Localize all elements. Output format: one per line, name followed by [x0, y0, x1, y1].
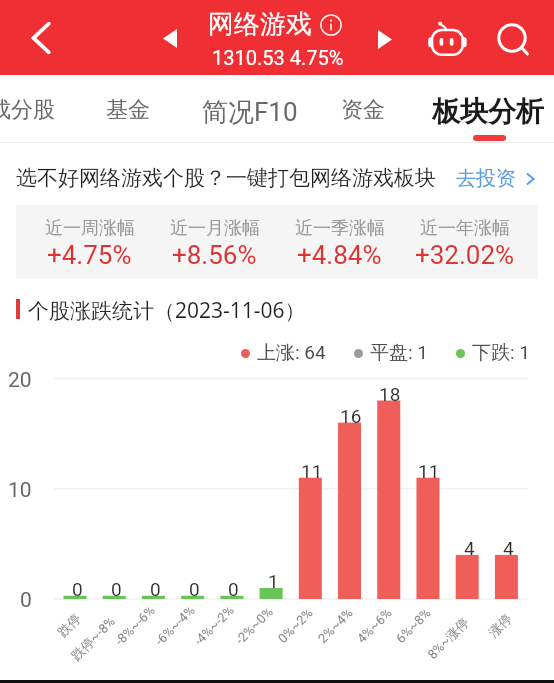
staticText: 下跌: 1 — [472, 341, 530, 365]
staticText: 平盘: 1 — [370, 341, 428, 365]
staticText: +4.75% — [47, 240, 132, 270]
staticText: 资金 — [341, 96, 385, 124]
staticText: 0 — [72, 578, 83, 600]
button[interactable]: 简况F10 — [202, 96, 298, 129]
staticText: 个股涨跌统计（2023-11-06） — [28, 296, 306, 325]
staticText: 选不好网络游戏个股？一键打包网络游戏板块 — [16, 165, 436, 191]
staticText: 0 — [111, 578, 122, 600]
staticText: 跌停 — [54, 610, 84, 640]
staticText: 10 — [8, 478, 32, 503]
staticText: 简况F10 — [202, 96, 298, 129]
button[interactable]: 成分股 — [0, 96, 55, 124]
staticText: 近一年涨幅 — [420, 217, 510, 240]
button[interactable]: 平盘: 1 — [354, 341, 428, 365]
staticText: 1 — [268, 570, 279, 592]
staticText: 0 — [228, 578, 239, 600]
staticText: 4 — [503, 537, 514, 559]
button[interactable]: Previous sector — [147, 17, 192, 61]
button[interactable]: 近一周涨幅 — [27, 214, 152, 270]
staticText: 近一季涨幅 — [295, 217, 385, 240]
staticText: 20 — [8, 368, 32, 393]
staticText: 涨停 — [485, 610, 515, 640]
staticText: 0%~2% — [275, 605, 316, 646]
button[interactable]: 资金 — [341, 96, 385, 124]
staticText: -6%~-4% — [152, 602, 198, 648]
staticText: 1310.53 4.75% — [212, 46, 344, 69]
staticText: +32.02% — [415, 240, 515, 270]
staticText: 近一月涨幅 — [170, 217, 260, 240]
staticText: 近一周涨幅 — [45, 217, 135, 240]
button[interactable]: 近一季涨幅 — [277, 214, 402, 270]
staticText: -8%~-6% — [112, 602, 158, 648]
staticText: 跌停~-8% — [67, 612, 118, 663]
staticText: 18 — [379, 383, 401, 405]
button[interactable]: Back — [12, 8, 72, 68]
staticText: 0 — [189, 578, 200, 600]
staticText: 网络游戏 — [208, 8, 312, 41]
staticText: 上涨: 64 — [257, 341, 326, 365]
button[interactable]: 近一月涨幅 — [152, 214, 277, 270]
staticText: +8.56% — [172, 240, 257, 270]
button[interactable]: 去投资 — [456, 166, 537, 191]
button[interactable]: 上涨: 64 — [241, 341, 326, 365]
staticText: -2%~0% — [233, 604, 276, 647]
staticText: 基金 — [106, 96, 150, 124]
staticText: +4.84% — [297, 240, 382, 270]
staticText: 0 — [20, 588, 32, 613]
staticText: 4%~6% — [354, 605, 395, 646]
button[interactable]: Search — [489, 8, 547, 66]
staticText: 2%~4% — [315, 605, 356, 646]
button[interactable]: 下跌: 1 — [456, 341, 530, 365]
staticText: 8%~涨停 — [424, 614, 472, 662]
button[interactable]: Next sector — [363, 17, 408, 61]
staticText: 去投资 — [456, 166, 516, 191]
staticText: 11 — [301, 460, 323, 482]
staticText: 11 — [418, 460, 440, 482]
staticText: 4 — [464, 537, 475, 559]
staticText: 成分股 — [0, 96, 55, 124]
staticText: 0 — [150, 578, 161, 600]
staticText: 6%~8% — [393, 605, 434, 646]
staticText: -4%~-2% — [191, 602, 237, 648]
button[interactable]: 近一年涨幅 — [402, 214, 527, 270]
button[interactable]: 板块分析 — [432, 94, 544, 129]
staticText: 板块分析 — [432, 94, 544, 129]
button[interactable]: AI assistant — [418, 8, 476, 66]
staticText: 16 — [340, 405, 362, 427]
button[interactable]: 基金 — [106, 96, 150, 124]
